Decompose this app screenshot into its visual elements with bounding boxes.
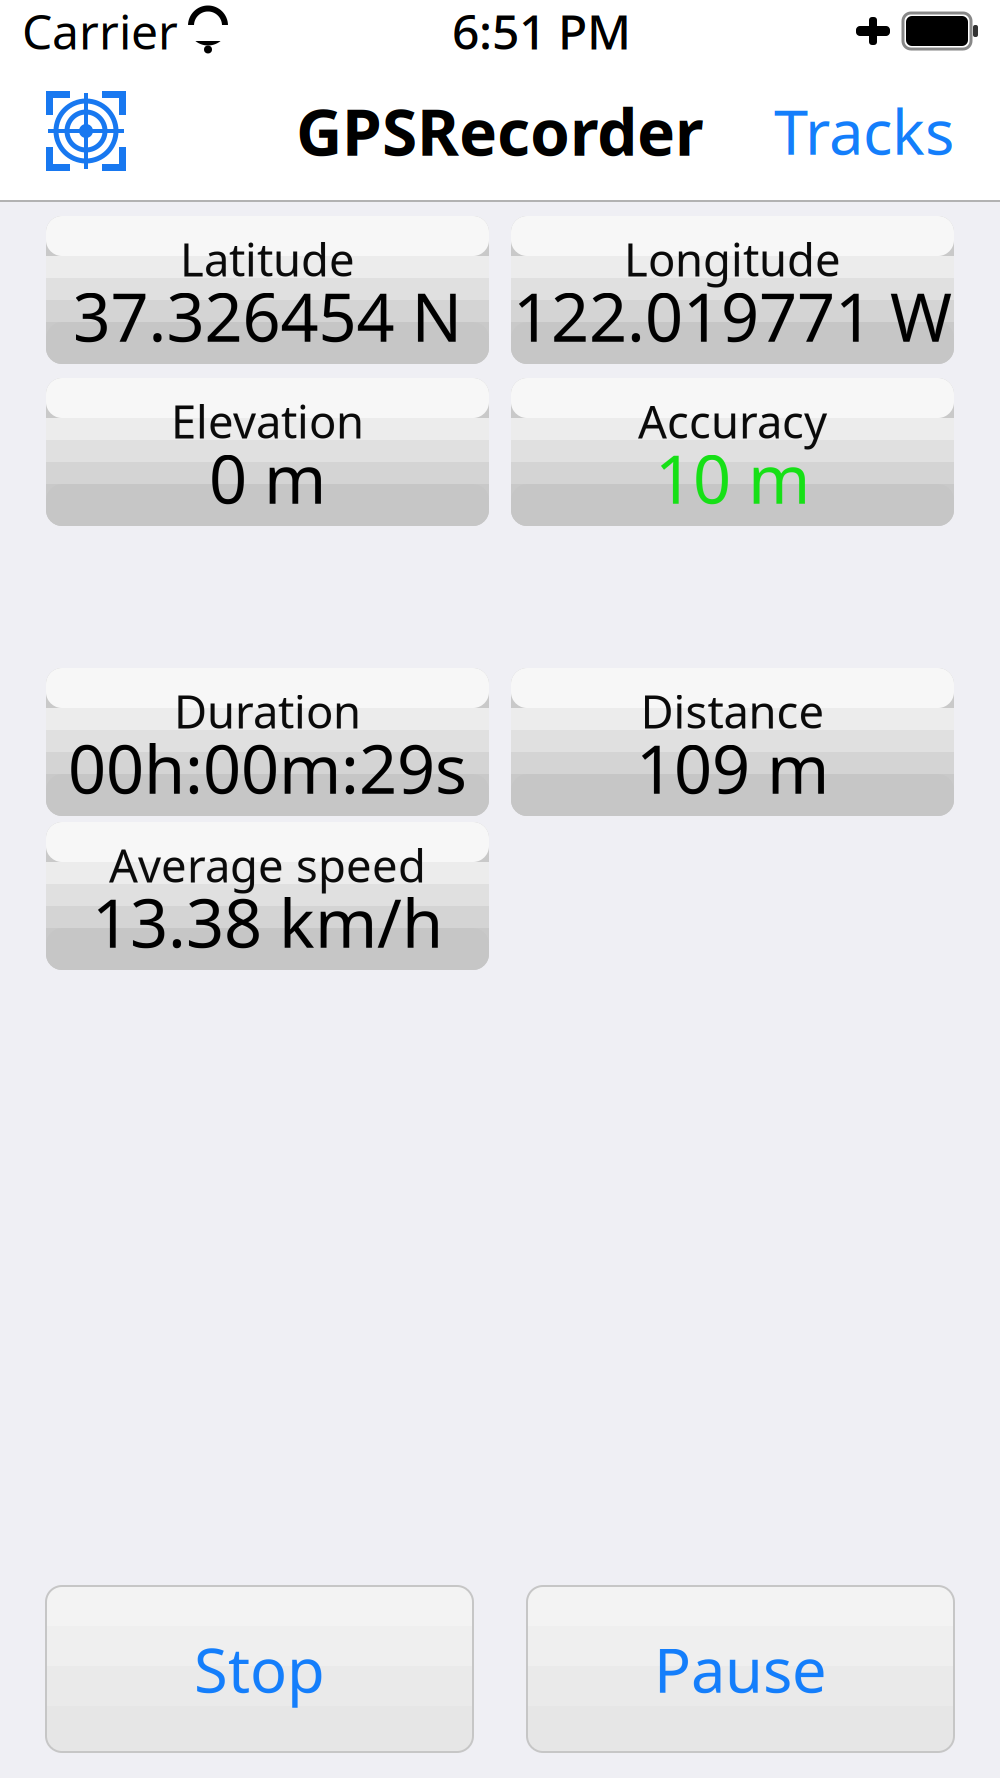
staticText: GPSRecorder	[296, 88, 704, 173]
button[interactable]: Locate	[38, 87, 134, 175]
staticText: Carrier	[22, 0, 178, 63]
staticText: 37.326454 N	[72, 272, 462, 360]
staticText: 10 m	[655, 434, 810, 522]
staticText: Pause	[654, 1628, 827, 1710]
staticText: Accuracy	[638, 391, 827, 451]
staticText: 122.019771 W	[513, 272, 952, 360]
staticText: Latitude	[180, 229, 355, 289]
staticText: 13.38 km/h	[92, 878, 443, 966]
staticText: Distance	[640, 681, 824, 741]
button[interactable]: Pause	[527, 1586, 954, 1752]
staticText: Longitude	[624, 229, 841, 289]
staticText: 0 m	[209, 434, 326, 522]
staticText: 00h:00m:29s	[68, 724, 467, 812]
button[interactable]: Stop	[46, 1586, 473, 1752]
staticText: 6:51 PM	[452, 0, 631, 63]
staticText: 109 m	[636, 724, 829, 812]
button[interactable]: Tracks	[766, 84, 962, 178]
staticText: Average speed	[109, 835, 426, 895]
staticText: Tracks	[774, 90, 954, 172]
staticText: Duration	[174, 681, 361, 741]
staticText: Elevation	[171, 391, 364, 451]
staticText: Stop	[194, 1628, 325, 1710]
